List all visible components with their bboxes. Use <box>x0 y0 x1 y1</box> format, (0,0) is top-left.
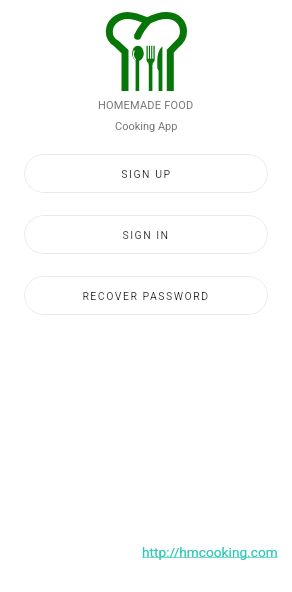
staticText: SIGN UP <box>121 168 172 180</box>
button[interactable]: RECOVER PASSWORD <box>24 276 268 315</box>
staticText: HOMEMADE FOOD <box>98 99 194 112</box>
button[interactable]: SIGN IN <box>24 215 268 254</box>
staticText: Cooking App <box>115 120 178 133</box>
staticText: SIGN IN <box>122 229 170 241</box>
button[interactable]: SIGN UP <box>24 154 268 193</box>
button[interactable]: http://hmcooking.com <box>142 544 292 592</box>
staticText: RECOVER PASSWORD <box>82 290 210 302</box>
